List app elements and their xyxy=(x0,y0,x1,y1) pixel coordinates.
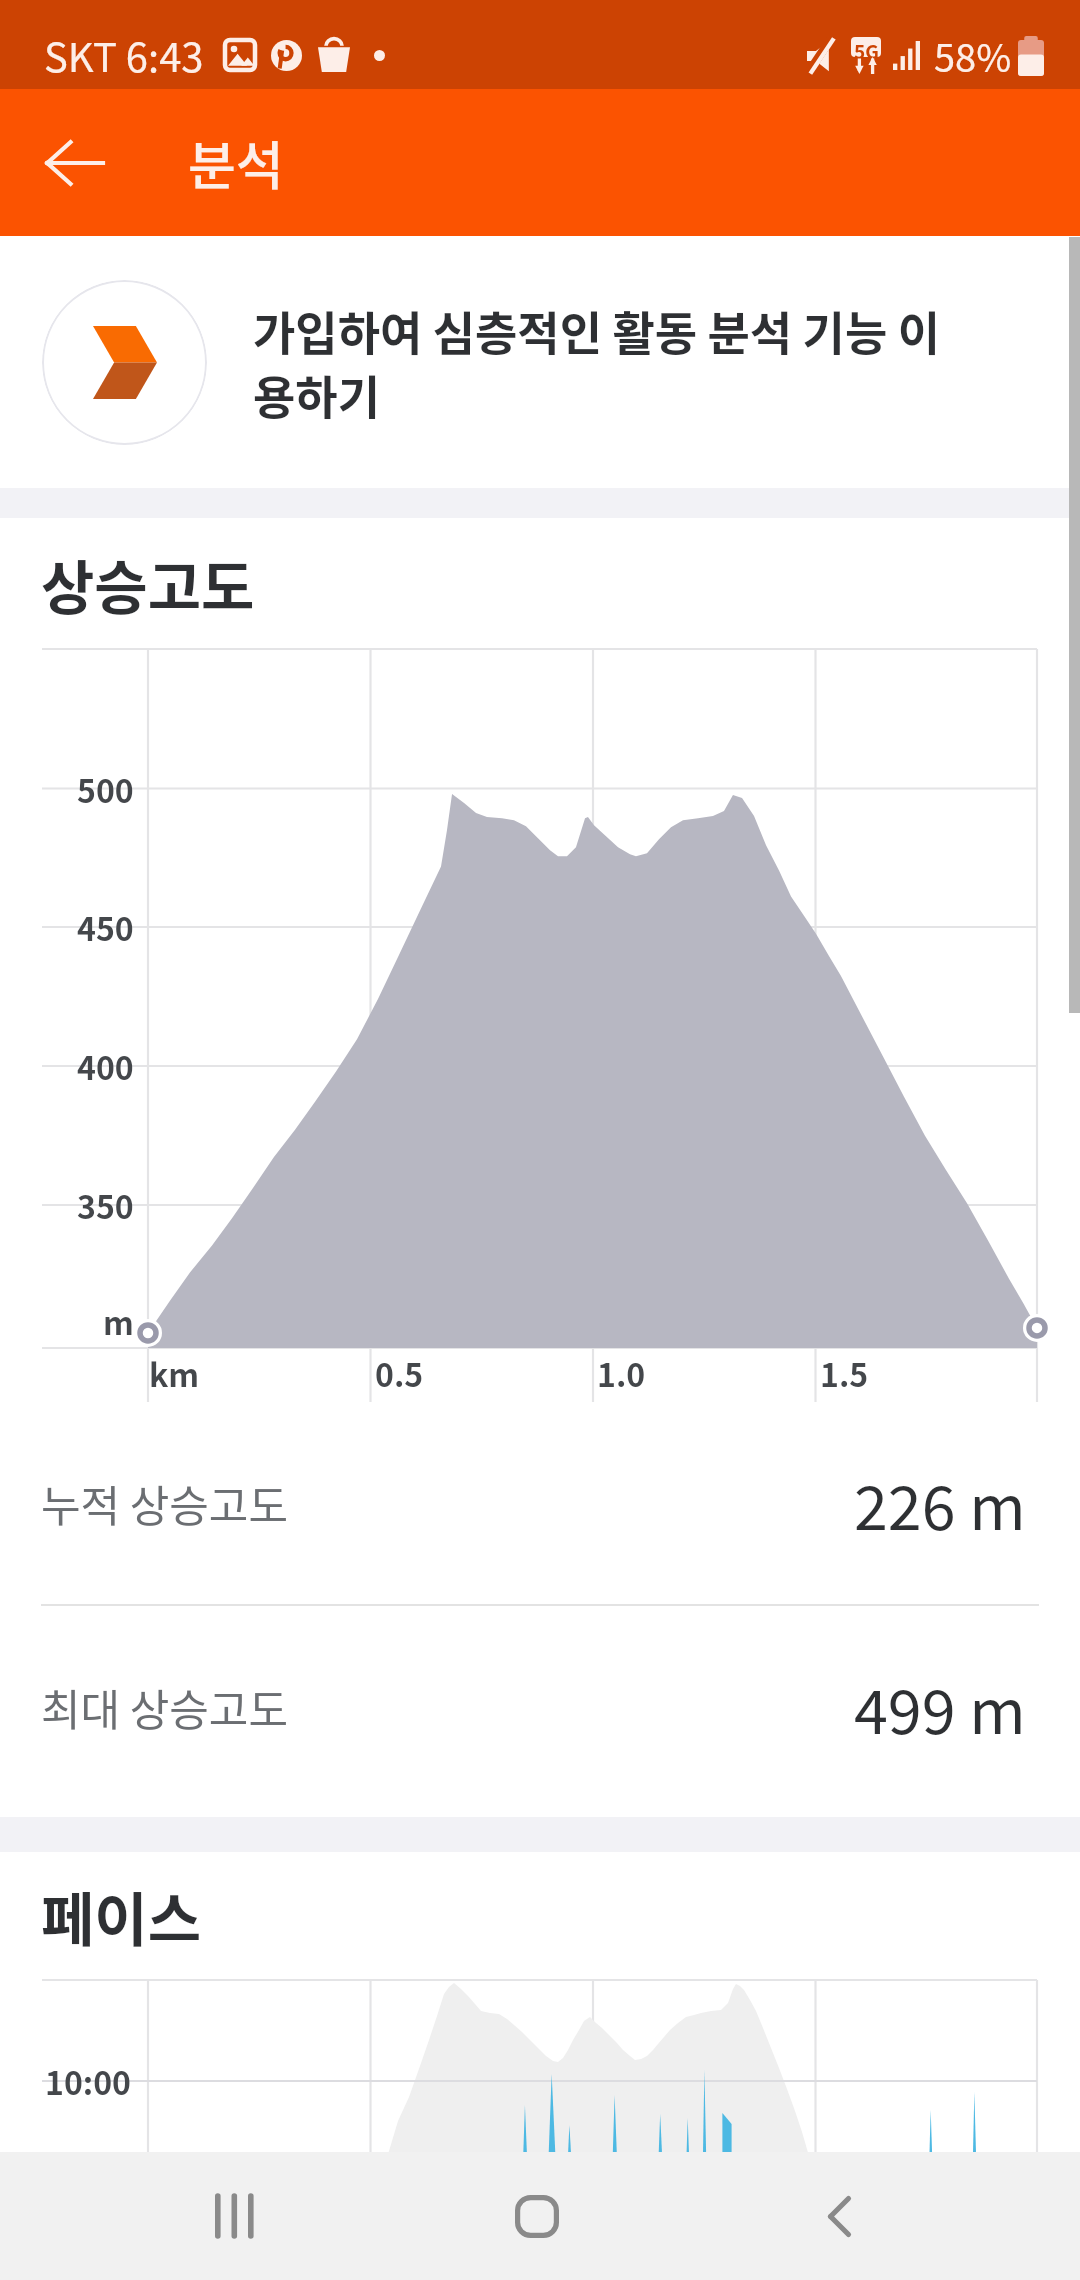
staticText: 가입하여 심층적인 활동 분석 기능 이용하기 xyxy=(253,297,943,428)
staticText: 400 xyxy=(77,1043,134,1089)
staticText: 최대 상승고도 xyxy=(41,1676,288,1738)
button[interactable]: Recent apps xyxy=(134,2152,334,2280)
staticText: 500 xyxy=(77,766,134,812)
staticText: 1.5 xyxy=(820,1350,869,1396)
button[interactable]: 누적 상승고도 xyxy=(0,1402,1080,1604)
staticText: km xyxy=(149,1350,200,1396)
staticText: 상승고도 xyxy=(41,542,255,626)
button[interactable]: Back xyxy=(26,115,122,211)
button[interactable]: 최대 상승고도 xyxy=(0,1606,1080,1808)
staticText: 페이스 xyxy=(41,1874,202,1958)
staticText: 10:00 xyxy=(45,2058,131,2104)
staticText: 499 m xyxy=(854,1663,1026,1751)
staticText: 1.0 xyxy=(597,1350,646,1396)
staticText: 분석 xyxy=(188,125,284,200)
staticText: 5G xyxy=(854,37,879,57)
button[interactable]: Home xyxy=(437,2152,637,2280)
button[interactable]: Back xyxy=(739,2152,939,2280)
staticText: 226 m xyxy=(854,1459,1026,1547)
staticText: 350 xyxy=(77,1182,134,1228)
staticText: SKT 6:43 xyxy=(44,26,204,84)
staticText: 450 xyxy=(77,904,134,950)
button[interactable]: 가입하여 심층적인 활동 분석 기능 이용하기 xyxy=(0,236,1080,488)
staticText: 58% xyxy=(934,28,1012,83)
staticText: m xyxy=(103,1298,134,1344)
staticText: 누적 상승고도 xyxy=(41,1472,288,1534)
staticText: 0.5 xyxy=(375,1350,424,1396)
